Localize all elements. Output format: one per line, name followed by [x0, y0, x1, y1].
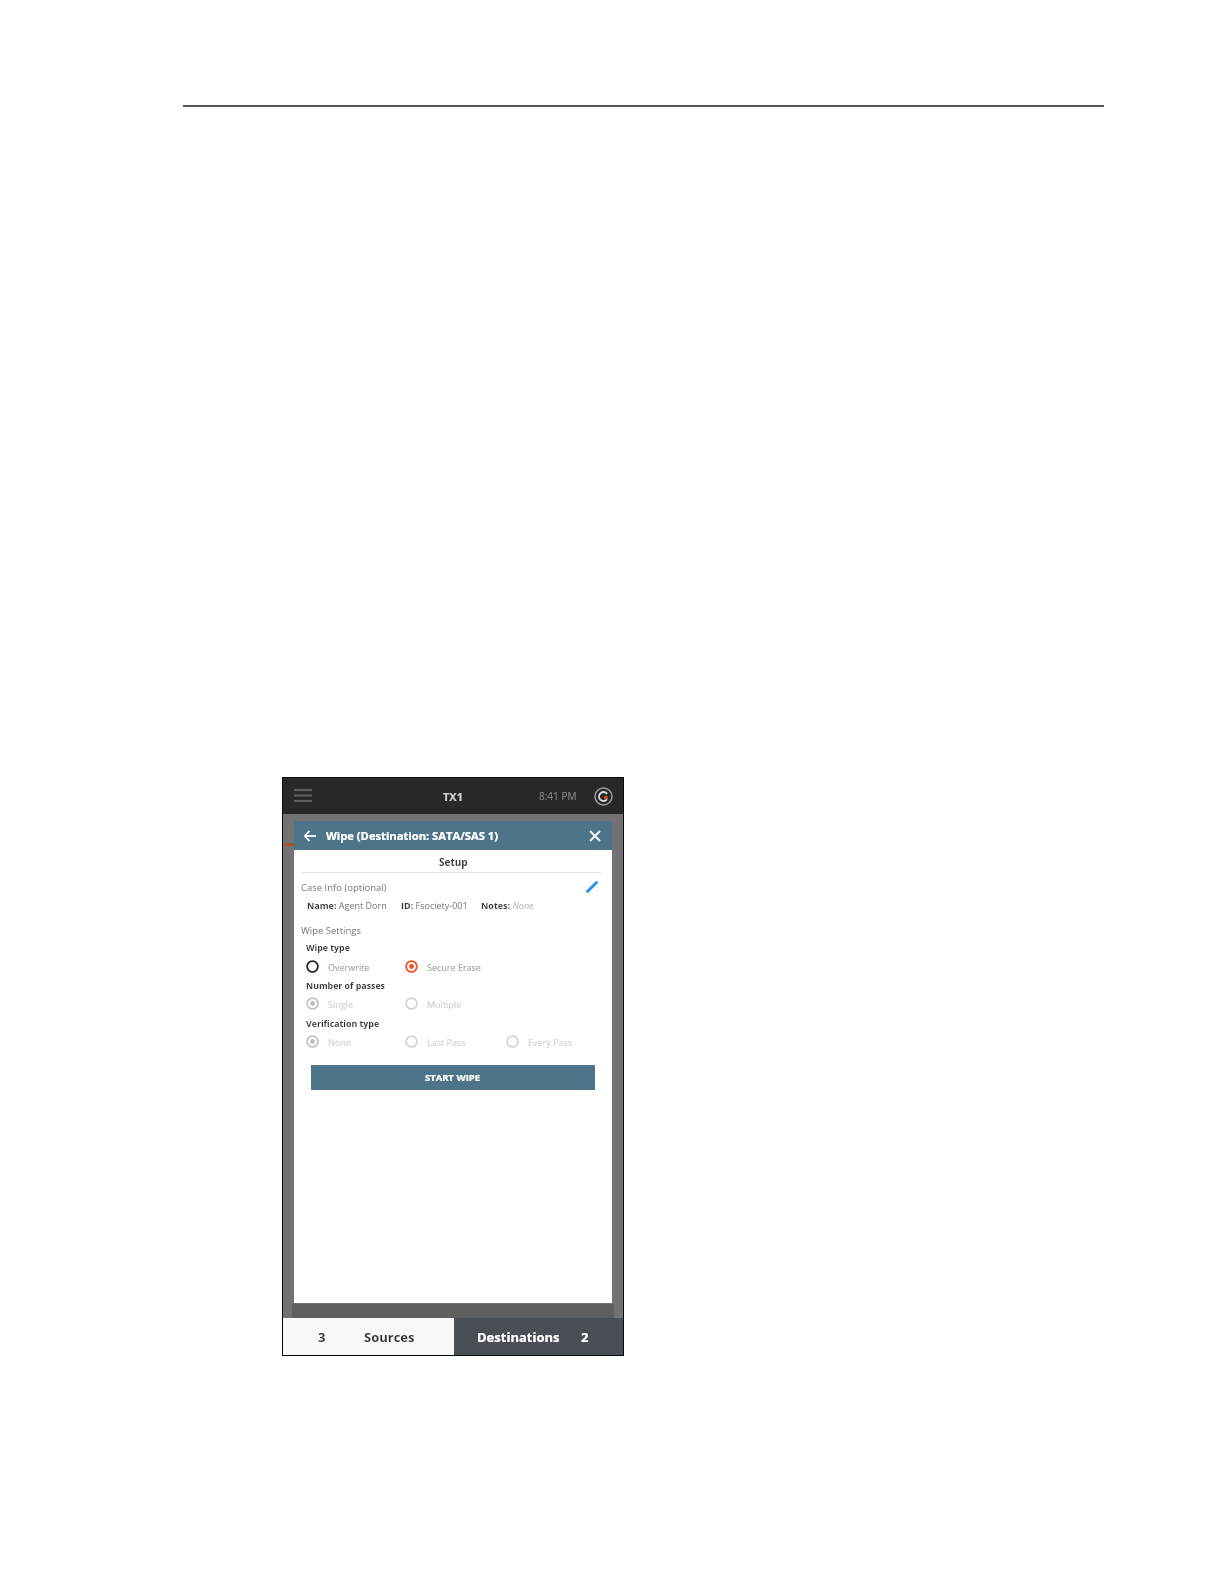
staticText: 2 — [581, 1328, 589, 1346]
staticText: Wipe (Destination: SATA/SAS 1) — [326, 828, 498, 843]
button[interactable]: Close — [583, 824, 607, 848]
staticText: Last Pass — [427, 1036, 466, 1048]
staticText: Wipe Settings — [301, 924, 362, 937]
staticText: ID: Fsociety-001 — [401, 899, 468, 911]
button[interactable]: Menu — [290, 783, 316, 806]
staticText: Wipe type — [306, 942, 350, 954]
button[interactable]: Every Pass — [506, 1035, 573, 1048]
staticText: Overwrite — [328, 961, 370, 973]
button[interactable]: START WIPE — [311, 1065, 595, 1090]
staticText: Secure Erase — [427, 961, 481, 973]
staticText: Name: Agent Dorn — [307, 899, 387, 911]
button[interactable]: None — [306, 1035, 351, 1048]
staticText: Sources — [364, 1328, 415, 1346]
button[interactable]: Setup — [294, 850, 612, 873]
staticText: START WIPE — [425, 1071, 481, 1084]
button[interactable]: App logo — [592, 785, 614, 807]
button[interactable]: Single — [306, 997, 353, 1010]
button[interactable]: Last Pass — [405, 1035, 466, 1048]
staticText: Multiple — [427, 998, 462, 1010]
staticText: Single — [328, 998, 353, 1010]
button[interactable]: Overwrite — [306, 960, 370, 973]
button[interactable]: Secure Erase — [405, 960, 481, 973]
staticText: Setup — [439, 855, 468, 869]
staticText: Every Pass — [528, 1036, 573, 1048]
button[interactable]: Edit case info — [583, 878, 601, 896]
staticText: 8:41 PM — [539, 789, 577, 803]
staticText: Number of passes — [306, 980, 385, 992]
button[interactable]: 3 — [283, 1318, 454, 1355]
button[interactable]: Destinations — [454, 1318, 623, 1355]
button[interactable]: Multiple — [405, 997, 462, 1010]
staticText: Case Info (optional) — [301, 881, 387, 894]
staticText: TX1 — [443, 789, 463, 804]
staticText: Notes: None — [481, 899, 534, 911]
staticText: 3 — [318, 1328, 326, 1346]
staticText: Verification type — [306, 1018, 380, 1030]
button[interactable]: Back — [298, 824, 322, 848]
staticText: Destinations — [477, 1328, 560, 1346]
staticText: None — [328, 1036, 351, 1048]
